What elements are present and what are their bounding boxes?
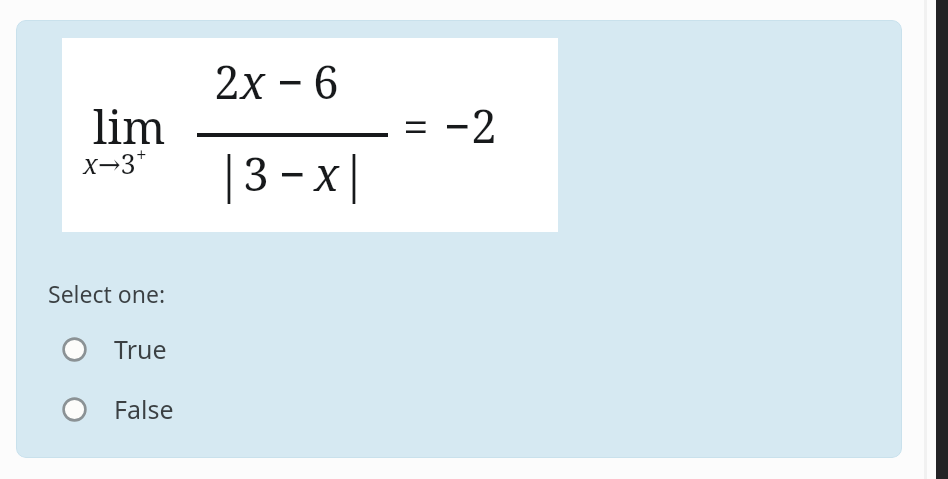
staticText: =: [403, 94, 429, 157]
button[interactable]: True: [44, 325, 364, 373]
staticText: 2: [471, 94, 497, 157]
staticText: −: [277, 50, 304, 113]
staticText: |: [215, 139, 243, 207]
staticText: lim: [93, 95, 166, 158]
staticText: x: [83, 145, 98, 182]
button[interactable]: False: [44, 385, 364, 433]
staticText: True: [114, 332, 167, 366]
staticText: x: [314, 142, 340, 205]
staticText: −: [444, 94, 471, 157]
staticText: −: [279, 142, 306, 205]
staticText: |: [340, 139, 368, 207]
staticText: 2: [214, 50, 240, 113]
staticText: +: [136, 142, 147, 168]
staticText: Select one:: [48, 278, 166, 309]
staticText: 3: [243, 142, 269, 205]
staticText: x: [240, 50, 266, 113]
staticText: False: [114, 392, 174, 426]
staticText: 6: [313, 50, 339, 113]
staticText: →3: [98, 145, 136, 182]
